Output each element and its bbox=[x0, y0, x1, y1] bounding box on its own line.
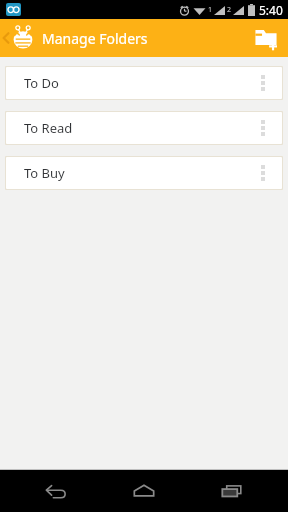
staticText: 5:40 bbox=[259, 2, 283, 18]
button[interactable]: Home bbox=[112, 469, 176, 512]
button[interactable]: More options for To Do bbox=[252, 68, 274, 98]
button[interactable]: To Read bbox=[6, 112, 282, 144]
staticText: Manage Folders bbox=[42, 29, 148, 48]
staticText: To Buy bbox=[24, 164, 65, 182]
staticText: 1 bbox=[208, 5, 213, 15]
staticText: 2 bbox=[227, 5, 232, 15]
button[interactable]: To Do bbox=[6, 67, 282, 99]
button[interactable]: To Buy bbox=[6, 157, 282, 189]
button[interactable]: Navigate up bbox=[2, 25, 36, 51]
button[interactable]: Recent apps bbox=[200, 469, 264, 512]
button[interactable]: More options for To Read bbox=[252, 113, 274, 143]
button[interactable]: Back bbox=[24, 469, 88, 512]
button[interactable]: New folder bbox=[250, 22, 282, 54]
staticText: To Read bbox=[24, 119, 73, 137]
button[interactable]: More options for To Buy bbox=[252, 158, 274, 188]
staticText: To Do bbox=[24, 74, 59, 92]
